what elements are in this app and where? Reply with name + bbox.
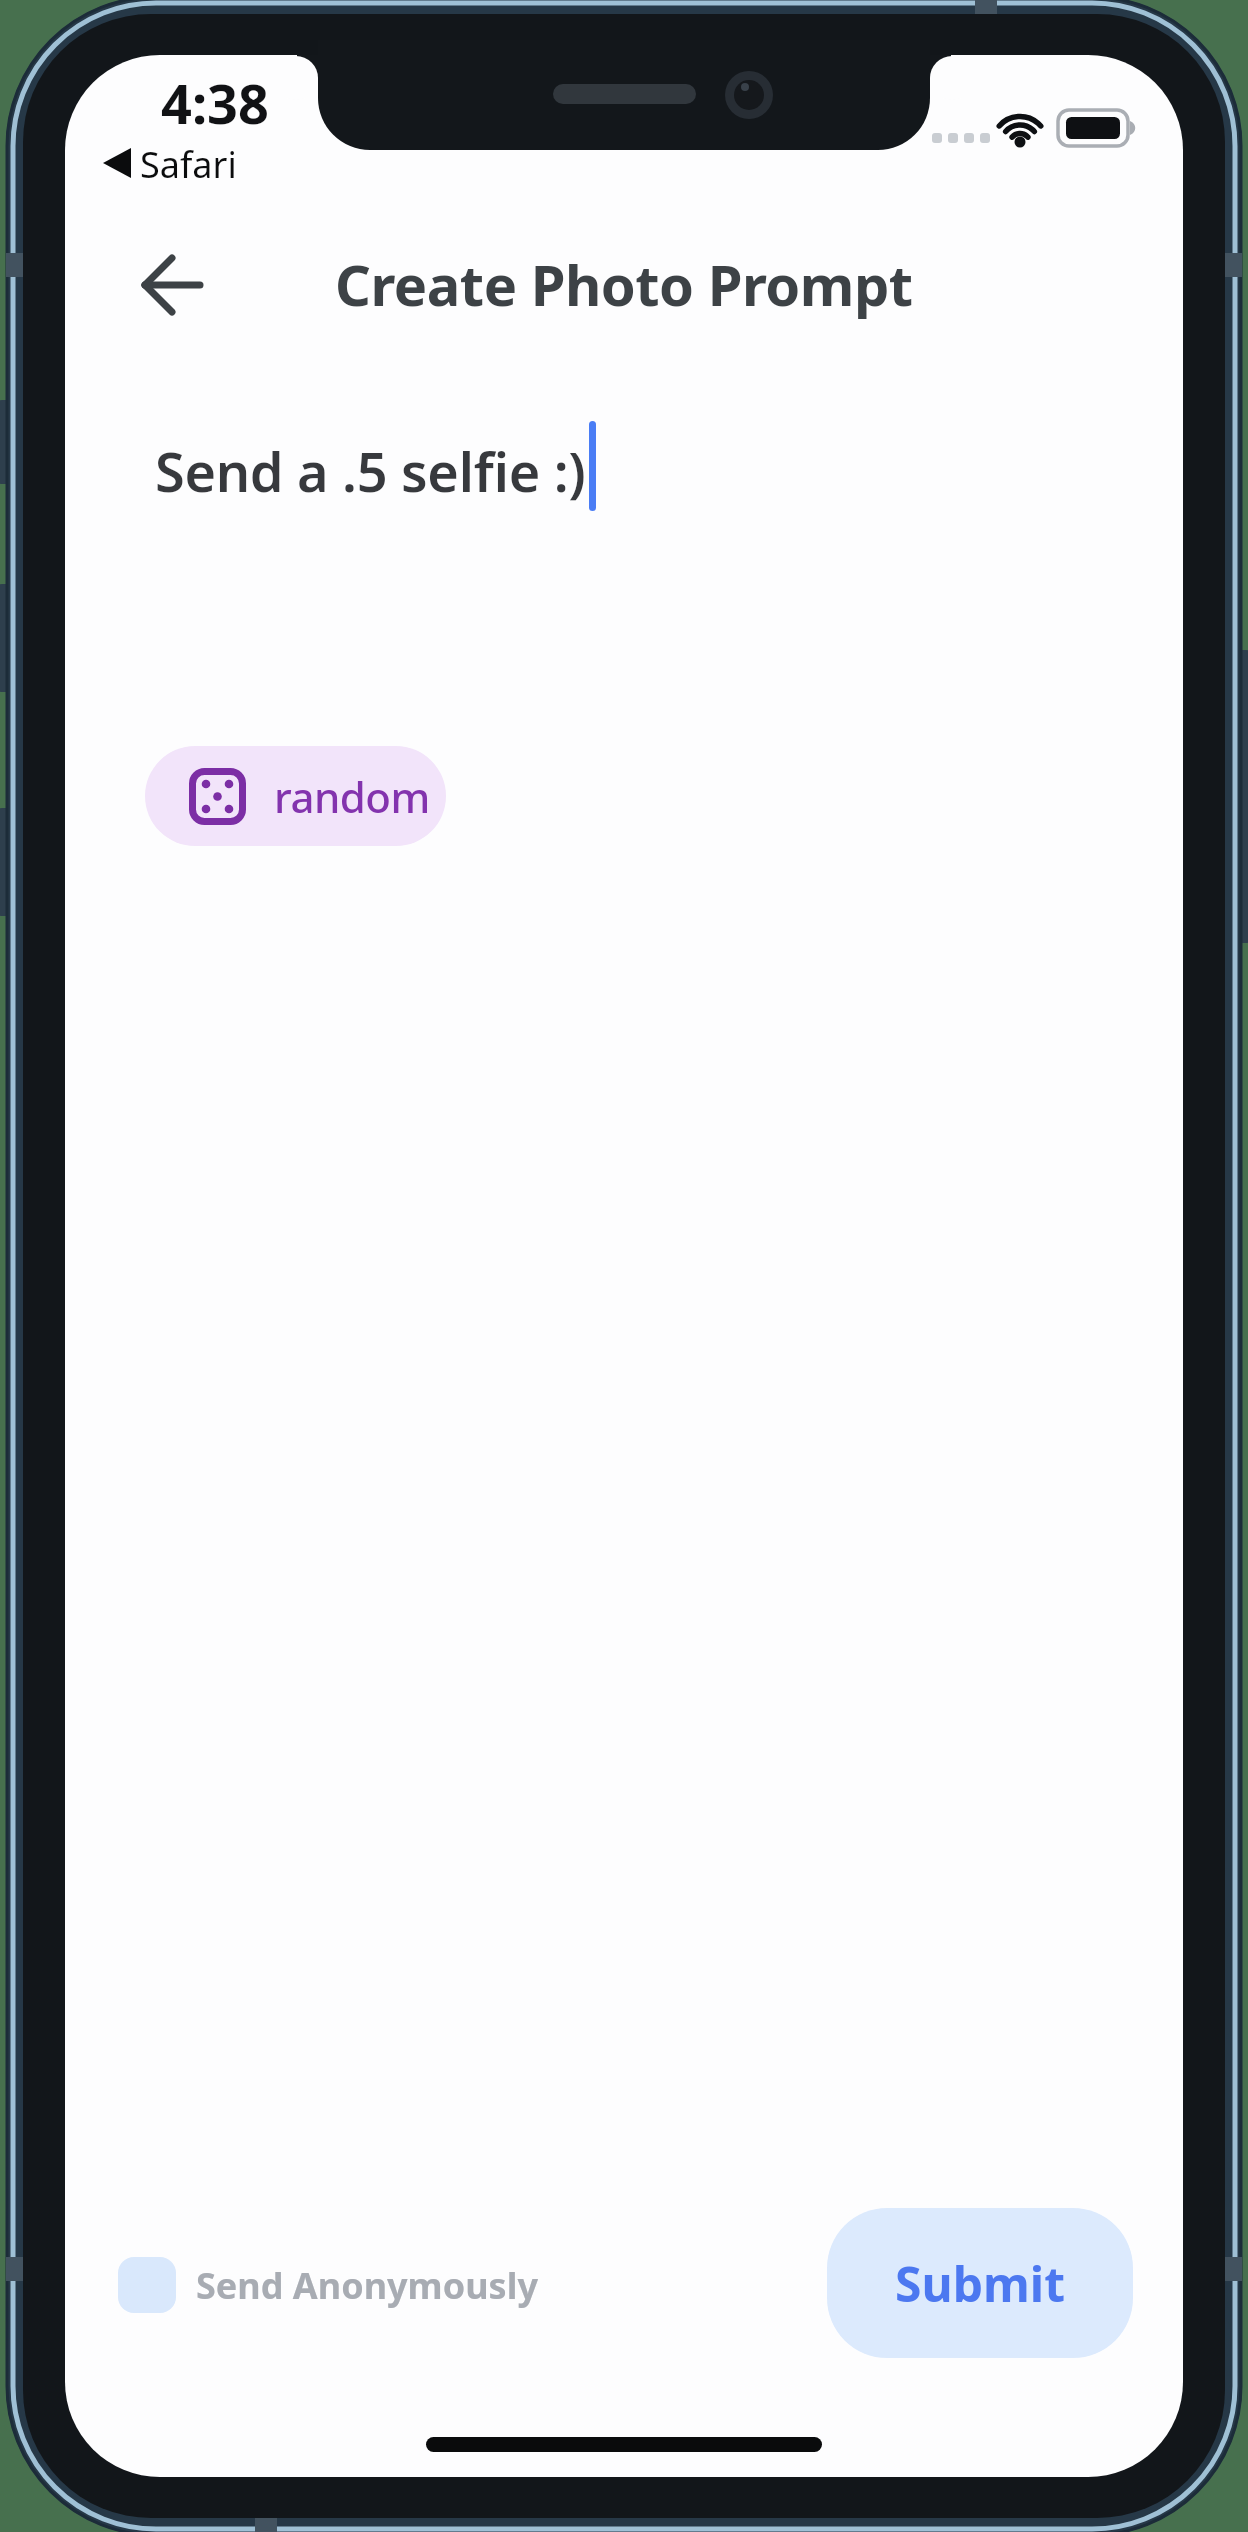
button[interactable]: random (145, 746, 446, 846)
button[interactable]: Send Anonymously (196, 2258, 576, 2312)
staticText: random (274, 768, 430, 825)
staticText: 4:38 (161, 66, 269, 132)
staticText: Submit (895, 2251, 1065, 2316)
button[interactable] (128, 246, 218, 324)
staticText: Safari (140, 140, 237, 186)
staticText: Create Photo Prompt (335, 246, 913, 322)
button[interactable]: Submit (827, 2208, 1133, 2358)
button[interactable] (118, 2257, 176, 2313)
staticText: Send Anonymously (196, 2261, 538, 2310)
staticText: Send a .5 selfie :) (155, 434, 586, 508)
